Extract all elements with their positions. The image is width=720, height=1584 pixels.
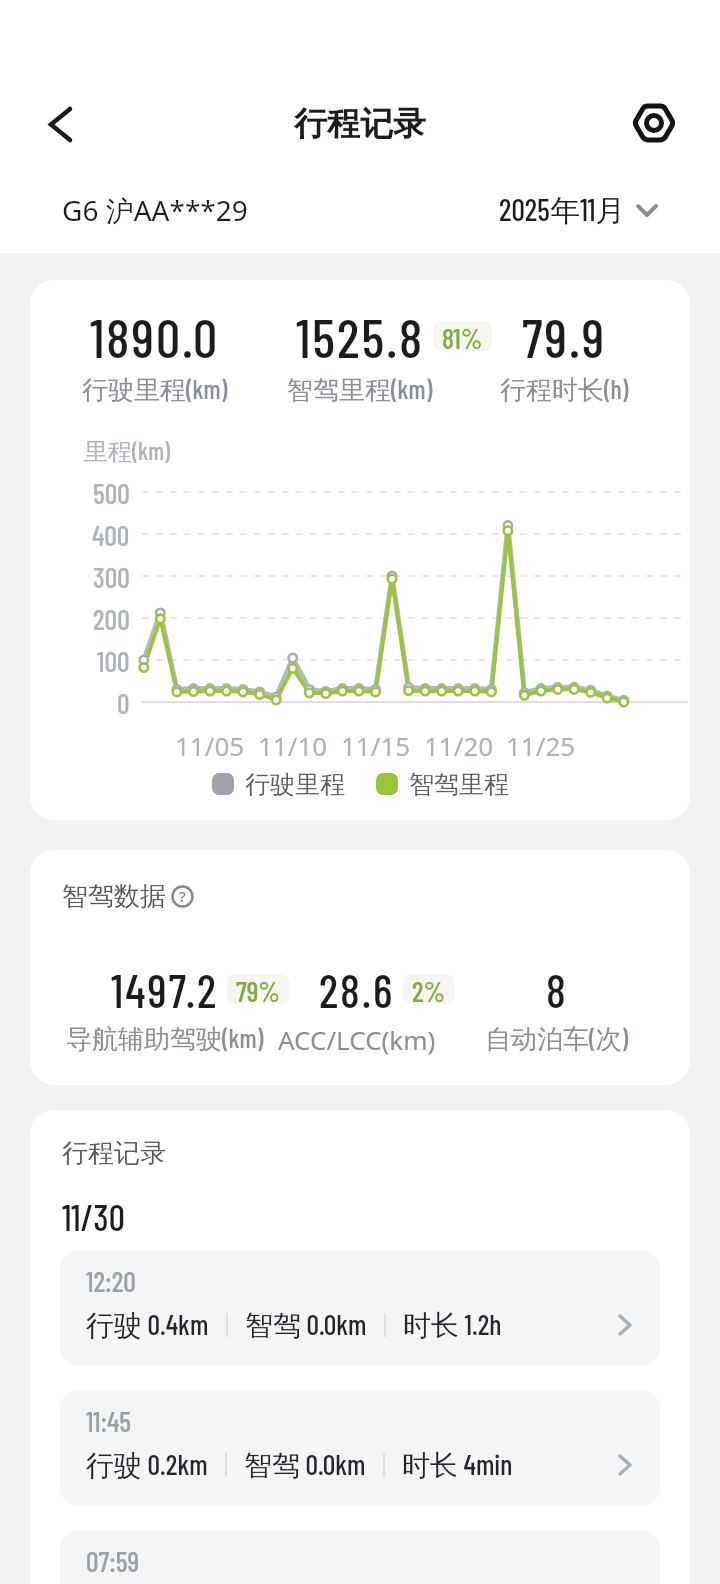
staticText: 行程记录 — [62, 1137, 166, 1170]
staticText: 行驶里程(km) — [82, 373, 228, 407]
staticText: 时长 1.2h — [403, 1307, 502, 1343]
staticText: 时长 4min — [402, 1447, 513, 1483]
staticText: 79.9 — [522, 304, 607, 369]
staticText: ? — [179, 886, 186, 906]
staticText: 里程(km) — [84, 436, 171, 464]
staticText: 行驶 0.2km — [86, 1447, 208, 1483]
staticText: G6 沪AA***29 — [62, 191, 248, 229]
staticText: 行程记录 — [294, 103, 426, 145]
staticText: 11:45 — [86, 1404, 132, 1438]
button[interactable] — [36, 100, 84, 148]
button[interactable]: 2025年11月 — [499, 188, 658, 232]
staticText: 8 — [546, 962, 568, 1017]
staticText: 07:59 — [86, 1544, 140, 1578]
staticText: 11/10 — [258, 728, 328, 758]
staticText: 智驾数据 — [62, 880, 166, 913]
staticText: 300 — [93, 560, 130, 592]
button[interactable] — [630, 99, 678, 147]
staticText: 智驾里程 — [409, 769, 509, 800]
staticText: 400 — [92, 518, 130, 550]
staticText: 智驾 0.0km — [244, 1447, 366, 1483]
staticText: 2025年11月 — [499, 191, 626, 230]
staticText: 11/30 — [62, 1195, 125, 1235]
staticText: 智驾 0.0km — [245, 1307, 367, 1343]
staticText: 200 — [93, 602, 130, 634]
staticText: 1497.2 — [111, 962, 219, 1017]
staticText: ACC/LCC(km) — [278, 1022, 436, 1057]
staticText: 11/15 — [341, 728, 411, 758]
staticText: 1890.0 — [90, 304, 220, 369]
staticText: 81% — [442, 321, 483, 351]
staticText: 11/05 — [175, 728, 245, 758]
staticText: 500 — [93, 476, 130, 508]
staticText: 100 — [97, 644, 130, 676]
staticText: 行驶里程 — [245, 769, 345, 800]
button[interactable]: 11:45 — [60, 1391, 660, 1505]
staticText: 行程时长(h) — [500, 373, 629, 407]
staticText: 自动泊车(次) — [485, 1022, 629, 1056]
staticText: 11/20 — [424, 728, 494, 758]
staticText: 0 — [117, 686, 130, 718]
staticText: 79% — [236, 974, 280, 1004]
button[interactable]: 07:59 — [60, 1531, 660, 1584]
staticText: 行驶 0.4km — [86, 1307, 209, 1343]
staticText: 2% — [412, 974, 446, 1004]
staticText: 导航辅助驾驶(km) — [66, 1022, 264, 1056]
staticText: 11/25 — [506, 728, 576, 758]
staticText: 1525.8 — [296, 304, 425, 369]
staticText: 28.6 — [319, 962, 395, 1017]
staticText: 智驾里程(km) — [287, 373, 433, 407]
button[interactable]: 12:20 — [60, 1251, 660, 1365]
staticText: 12:20 — [86, 1264, 136, 1298]
